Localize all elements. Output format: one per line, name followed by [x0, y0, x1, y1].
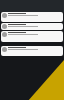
button[interactable]	[1, 23, 63, 30]
button[interactable]	[1, 46, 63, 56]
button[interactable]	[1, 12, 63, 22]
button[interactable]	[1, 31, 63, 42]
